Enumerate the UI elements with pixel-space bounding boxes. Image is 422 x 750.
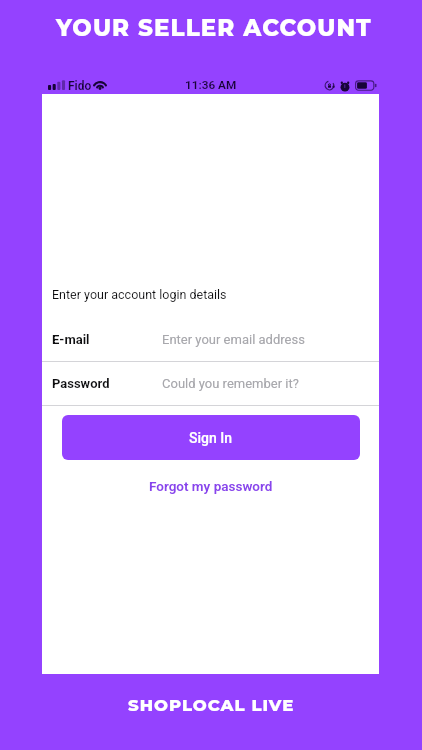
staticText: Could you remember it? <box>162 376 299 391</box>
staticText: E-mail <box>52 332 90 347</box>
staticText: Enter your account login details <box>52 287 227 302</box>
staticText: Fido <box>68 79 92 93</box>
staticText: Forgot my password <box>149 478 273 494</box>
other: Rotation lock <box>324 80 335 91</box>
staticText: Sign In <box>189 430 233 446</box>
staticText: YOUR SELLER ACCOUNT <box>56 14 372 42</box>
other: Alarm <box>340 80 350 91</box>
button[interactable]: Sign In <box>62 415 360 460</box>
staticText: 11:36 AM <box>185 78 237 92</box>
button[interactable]: Password <box>42 361 379 405</box>
staticText: Enter your email address <box>162 332 305 347</box>
button[interactable]: SHOPLOCAL LIVE <box>128 695 295 715</box>
button[interactable]: E-mail <box>42 317 379 361</box>
button[interactable]: Forgot my password <box>139 474 283 498</box>
staticText: Password <box>52 376 110 391</box>
other: Wi-Fi <box>93 79 107 90</box>
other: Cellular signal <box>48 80 65 90</box>
other: Battery <box>355 80 377 91</box>
